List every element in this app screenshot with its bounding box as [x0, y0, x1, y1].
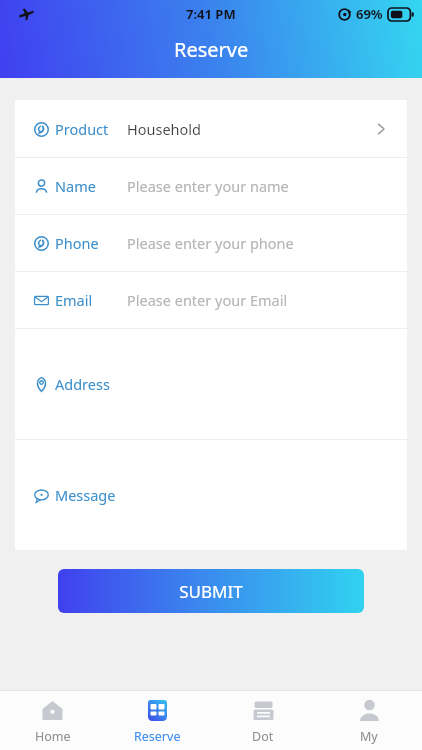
- button[interactable]: Email: [15, 272, 407, 328]
- staticText: Reserve: [174, 36, 249, 63]
- staticText: Please enter your phone: [127, 233, 294, 253]
- staticText: Email: [55, 290, 93, 310]
- staticText: Message: [55, 485, 116, 505]
- button[interactable]: Phone: [15, 215, 407, 271]
- staticText: Reserve: [134, 728, 181, 745]
- button[interactable]: Product: [15, 100, 407, 157]
- staticText: Please enter your name: [127, 176, 289, 196]
- staticText: My: [360, 728, 378, 745]
- staticText: Name: [55, 176, 96, 196]
- button[interactable]: Message: [15, 440, 407, 550]
- button[interactable]: Reserve: [105, 691, 210, 750]
- button[interactable]: My: [316, 691, 422, 750]
- button[interactable]: Name: [15, 158, 407, 214]
- button[interactable]: Address: [15, 329, 407, 439]
- button[interactable]: SUBMIT: [58, 569, 364, 613]
- button[interactable]: Dot: [210, 691, 316, 750]
- staticText: Household: [127, 119, 201, 139]
- staticText: Phone: [55, 233, 99, 253]
- button[interactable]: Home: [0, 691, 105, 750]
- staticText: Please enter your Email: [127, 290, 288, 310]
- staticText: 69%: [356, 5, 383, 23]
- staticText: Home: [35, 728, 71, 745]
- staticText: Product: [55, 119, 109, 139]
- staticText: Address: [55, 374, 110, 394]
- staticText: 7:41 PM: [186, 5, 236, 23]
- staticText: SUBMIT: [179, 580, 243, 603]
- staticText: Dot: [252, 728, 274, 745]
